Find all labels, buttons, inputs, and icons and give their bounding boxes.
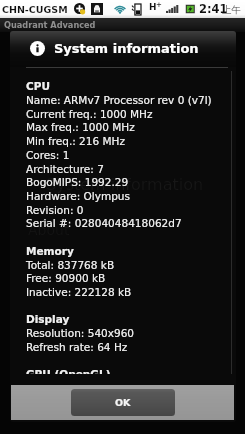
staticText: Name: ARMv7 Processor rev 0 (v7l) bbox=[26, 94, 212, 106]
staticText: Min freq.: 216 MHz bbox=[26, 135, 125, 147]
staticText: Memory bbox=[26, 245, 74, 257]
staticText: BogoMIPS: 1992.29 bbox=[26, 176, 129, 188]
staticText: Hardware: Olympus bbox=[26, 190, 130, 202]
staticText: Current freq.: 1000 MHz bbox=[26, 108, 153, 120]
staticText: 2:41 bbox=[199, 2, 228, 15]
staticText: Display bbox=[26, 313, 70, 325]
staticText: H bbox=[149, 2, 157, 12]
staticText: OK bbox=[115, 397, 131, 408]
staticText: 上午 bbox=[222, 4, 241, 16]
staticText: CHN-CUGSM bbox=[2, 4, 68, 15]
staticText: + bbox=[156, 1, 162, 9]
staticText: Inactive: 222128 kB bbox=[26, 286, 132, 298]
staticText: Serial #: 02804048418062d7 bbox=[26, 217, 182, 229]
staticText: Refresh rate: 64 Hz bbox=[26, 341, 128, 353]
staticText: Revision: 0 bbox=[26, 204, 84, 216]
staticText: About bbox=[28, 222, 70, 238]
button[interactable]: OK bbox=[71, 389, 175, 416]
staticText: GPU (OpenGL) bbox=[26, 368, 111, 374]
staticText: CPU bbox=[26, 80, 50, 92]
staticText: Max freq.: 1000 MHz bbox=[26, 121, 135, 133]
staticText: System information bbox=[46, 175, 204, 194]
staticText: Architecture: 7 bbox=[26, 163, 104, 175]
staticText: Cores: 1 bbox=[26, 149, 70, 161]
staticText: Quadrant Advanced bbox=[4, 20, 96, 30]
staticText: Resolution: 540x960 bbox=[26, 327, 135, 339]
staticText: Total: 837768 kB bbox=[26, 259, 115, 271]
staticText: Free: 90900 kB bbox=[26, 272, 106, 284]
staticText: System information bbox=[54, 41, 199, 56]
